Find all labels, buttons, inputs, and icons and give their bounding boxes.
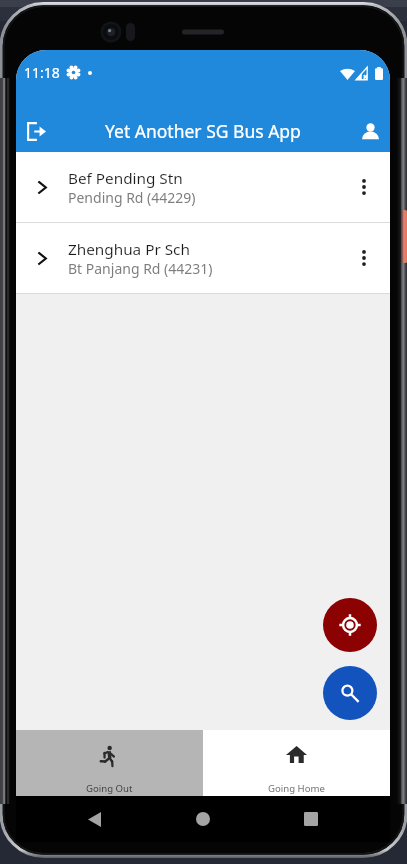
button[interactable]: Search: [323, 666, 377, 720]
button[interactable]: More options: [337, 152, 390, 222]
button[interactable]: More options: [337, 223, 390, 293]
staticText: Pending Rd (44229): [68, 188, 196, 207]
staticText: Going Out: [86, 782, 133, 795]
staticText: Going Home: [268, 782, 325, 795]
staticText: Bef Pending Stn: [68, 168, 183, 189]
button[interactable]: Account: [351, 112, 389, 150]
staticText: 11:18: [24, 63, 60, 82]
button[interactable]: Log out: [17, 112, 55, 150]
button[interactable]: Going Home: [203, 730, 390, 796]
button[interactable]: Back: [81, 806, 107, 832]
button[interactable]: Recent apps: [298, 806, 324, 832]
staticText: Yet Another SG Bus App: [105, 119, 301, 143]
button[interactable]: Zhenghua Pr Sch: [16, 223, 390, 293]
button[interactable]: My location: [323, 598, 377, 652]
button[interactable]: Home: [190, 806, 216, 832]
staticText: Zhenghua Pr Sch: [68, 239, 190, 260]
button[interactable]: Bef Pending Stn: [16, 152, 390, 222]
staticText: Bt Panjang Rd (44231): [68, 259, 213, 278]
button[interactable]: Going Out: [16, 730, 203, 796]
